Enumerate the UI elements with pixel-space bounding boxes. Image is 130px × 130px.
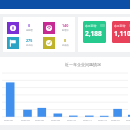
button[interactable]: 已评价 — [39, 35, 75, 50]
staticText: 2024-06 — [4, 118, 13, 121]
button[interactable]: 已办结 — [3, 35, 39, 50]
staticText: 2025-01 — [111, 118, 120, 121]
other: 待处理 — [7, 22, 19, 34]
button[interactable]: 处理中 — [39, 20, 75, 35]
staticText: 2024-11 — [83, 118, 92, 121]
staticText: 本月新增 — [114, 24, 126, 28]
staticText: 2024-12 — [98, 118, 107, 121]
staticText: 2025-02 — [126, 118, 130, 121]
staticText: 近一年企业问题情况 — [65, 62, 101, 67]
staticText: 2024-08 — [35, 118, 44, 121]
staticText: 本月新增 — [85, 24, 97, 28]
staticText: 1,110 — [114, 29, 130, 38]
button[interactable]: 待处理 — [3, 20, 39, 35]
staticText: 已办结 — [26, 44, 33, 47]
other: 已办结 — [7, 37, 19, 49]
staticText: 2024-10 — [67, 118, 76, 121]
button[interactable]: 本月新增 — [112, 21, 130, 43]
staticText: 275 — [26, 38, 33, 43]
staticText: 0 — [64, 38, 67, 43]
staticText: 待处理 — [26, 29, 33, 32]
other: 处理中 — [43, 22, 55, 34]
other: 已评价 — [43, 37, 55, 49]
staticText: 处理中 — [62, 29, 69, 32]
staticText: 140 — [62, 23, 69, 28]
staticText: 已评价 — [62, 44, 69, 47]
staticText: 2,188 — [85, 29, 102, 38]
staticText: 0 — [28, 23, 31, 28]
staticText: 2024-07 — [21, 118, 30, 121]
staticText: 2024-09 — [51, 118, 60, 121]
button[interactable]: 本月新增 — [83, 21, 106, 43]
